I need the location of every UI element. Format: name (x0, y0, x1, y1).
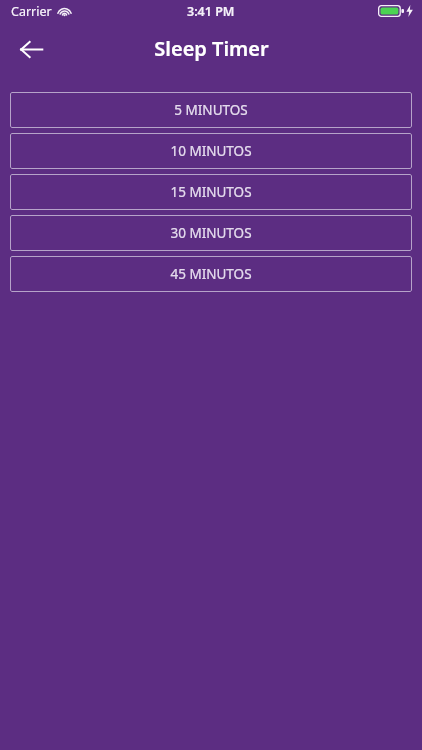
button[interactable]: 45 MINUTOS (10, 256, 412, 292)
button[interactable]: 30 MINUTOS (10, 215, 412, 251)
staticText: 5 MINUTOS (174, 101, 248, 119)
staticText: 45 MINUTOS (170, 265, 252, 283)
staticText: 15 MINUTOS (170, 183, 252, 201)
staticText: 3:41 PM (187, 3, 235, 20)
staticText: Sleep Timer (154, 35, 269, 62)
button[interactable]: 15 MINUTOS (10, 174, 412, 210)
button[interactable]: Back (10, 28, 52, 70)
staticText: 10 MINUTOS (170, 142, 252, 160)
button[interactable]: 5 MINUTOS (10, 92, 412, 128)
staticText: 30 MINUTOS (170, 224, 252, 242)
button[interactable]: 10 MINUTOS (10, 133, 412, 169)
staticText: Carrier (11, 3, 52, 20)
